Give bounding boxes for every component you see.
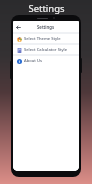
button[interactable]: Select Theme Style	[13, 34, 79, 43]
staticText: About Us	[24, 58, 42, 64]
staticText: Select Theme Style	[24, 36, 61, 42]
staticText: Select Calculator Style	[24, 47, 68, 53]
button[interactable]: Back	[14, 23, 22, 31]
staticText: Settings	[28, 2, 65, 15]
button[interactable]: Select Calculator Style	[13, 45, 79, 54]
button[interactable]: About Us	[13, 56, 79, 65]
staticText: Settings	[37, 24, 55, 30]
